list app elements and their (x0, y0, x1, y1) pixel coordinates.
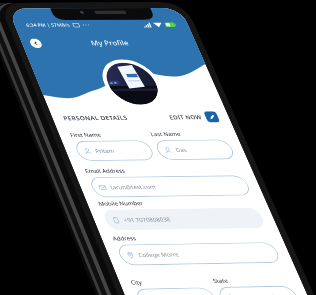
staticText: EDIT NOW (238, 250, 304, 267)
staticText: PERSONAL DETAILS (22, 249, 152, 267)
staticText: My Profile (142, 72, 219, 94)
button[interactable]: EDIT NOW (238, 245, 316, 271)
button[interactable]: Back (17, 72, 40, 95)
staticText: Last Name (185, 288, 246, 295)
staticText: 6:34 PM | 57MB/s (24, 33, 114, 47)
